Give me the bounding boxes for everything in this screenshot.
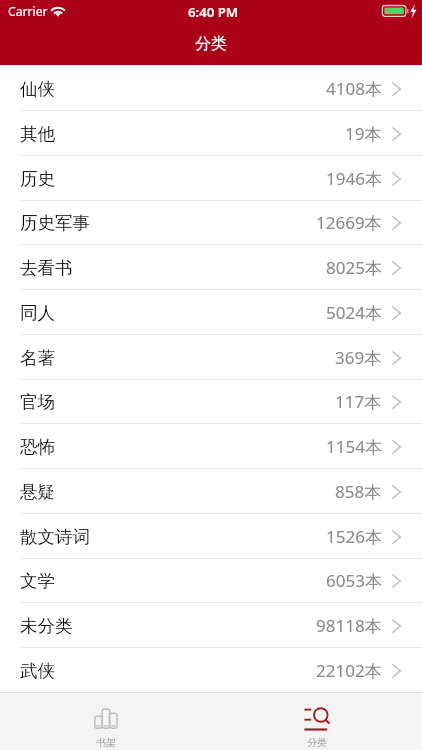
staticText: 仙侠 — [20, 78, 55, 100]
button[interactable]: 恐怖 — [0, 424, 422, 469]
button[interactable]: 官场 — [0, 379, 422, 424]
button[interactable]: 散文诗词 — [0, 514, 422, 559]
staticText: 12669本 — [316, 211, 382, 234]
staticText: 分类 — [307, 736, 327, 749]
staticText: 22102本 — [316, 659, 382, 682]
staticText: 1526本 — [326, 525, 382, 548]
button[interactable]: 同人 — [0, 290, 422, 335]
staticText: 散文诗词 — [20, 526, 90, 548]
button[interactable]: 历史 — [0, 156, 422, 201]
staticText: 6053本 — [326, 569, 382, 592]
button[interactable]: 文学 — [0, 558, 422, 603]
staticText: 分类 — [195, 34, 227, 54]
staticText: 历史 — [20, 168, 55, 190]
staticText: 未分类 — [20, 615, 73, 637]
staticText: 同人 — [20, 302, 55, 324]
button[interactable]: 武侠 — [0, 648, 422, 693]
staticText: 1946本 — [326, 167, 382, 190]
staticText: 恐怖 — [20, 436, 55, 458]
button[interactable]: 分类 — [211, 693, 422, 750]
staticText: 6:40 PM — [188, 3, 239, 21]
button[interactable]: 去看书 — [0, 245, 422, 290]
button[interactable]: 未分类 — [0, 603, 422, 648]
staticText: 去看书 — [20, 257, 73, 279]
staticText: 19本 — [345, 122, 382, 145]
other: Battery charging — [382, 4, 418, 17]
button[interactable]: 仙侠 — [0, 66, 422, 111]
staticText: 98118本 — [316, 614, 382, 637]
staticText: 4108本 — [326, 77, 382, 100]
staticText: 其他 — [20, 123, 55, 145]
staticText: 369本 — [335, 346, 382, 369]
button[interactable]: 名著 — [0, 335, 422, 380]
staticText: 书架 — [96, 736, 116, 749]
staticText: 名著 — [20, 347, 55, 369]
staticText: 武侠 — [20, 660, 55, 682]
button[interactable]: 其他 — [0, 111, 422, 156]
staticText: 文学 — [20, 570, 55, 592]
button[interactable]: 悬疑 — [0, 469, 422, 514]
staticText: 5024本 — [326, 301, 382, 324]
staticText: Carrier — [8, 3, 48, 20]
staticText: 117本 — [335, 390, 382, 413]
staticText: 悬疑 — [20, 481, 55, 503]
staticText: 历史军事 — [20, 212, 90, 234]
button[interactable]: 书架 — [0, 693, 211, 750]
staticText: 858本 — [335, 480, 382, 503]
staticText: 1154本 — [326, 435, 382, 458]
other: Wi-Fi signal — [50, 5, 66, 16]
staticText: 8025本 — [326, 256, 382, 279]
staticText: 官场 — [20, 391, 55, 413]
button[interactable]: 历史军事 — [0, 200, 422, 245]
